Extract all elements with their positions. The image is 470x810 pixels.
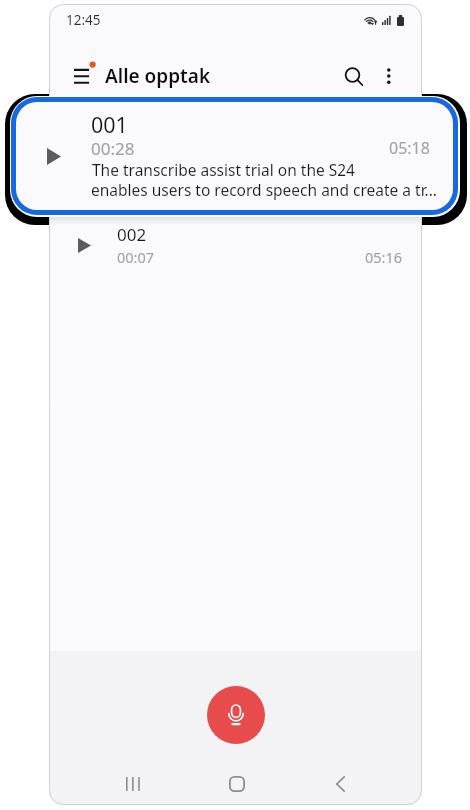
button[interactable]: Recent apps xyxy=(111,762,155,805)
staticText: 00:07 xyxy=(117,247,155,267)
button[interactable]: Home xyxy=(215,762,259,805)
staticText: The transcribe assist trial on the S24 xyxy=(92,159,355,180)
staticText: Alle opptak xyxy=(105,63,211,89)
button[interactable]: Back xyxy=(318,762,362,805)
staticText: 00:28 xyxy=(91,137,135,160)
staticText: 00:28 xyxy=(117,132,155,152)
staticText: 05:18 xyxy=(365,132,403,152)
staticText: 05:16 xyxy=(365,247,403,267)
button[interactable]: 001 xyxy=(16,102,453,210)
button[interactable]: 001 xyxy=(49,100,422,215)
staticText: 001 xyxy=(91,110,128,139)
staticText: 05:18 xyxy=(389,137,430,159)
staticText: 12:45 xyxy=(66,11,101,29)
button[interactable]: Record xyxy=(207,686,265,744)
staticText: 002 xyxy=(117,223,147,246)
button[interactable]: 002 xyxy=(49,215,422,277)
staticText: 001 xyxy=(117,108,147,131)
staticText: enables users to record speech and creat… xyxy=(91,179,438,200)
button[interactable]: Search xyxy=(332,53,374,95)
button[interactable]: Open navigation drawer xyxy=(54,48,100,94)
button[interactable]: More options xyxy=(368,53,410,95)
